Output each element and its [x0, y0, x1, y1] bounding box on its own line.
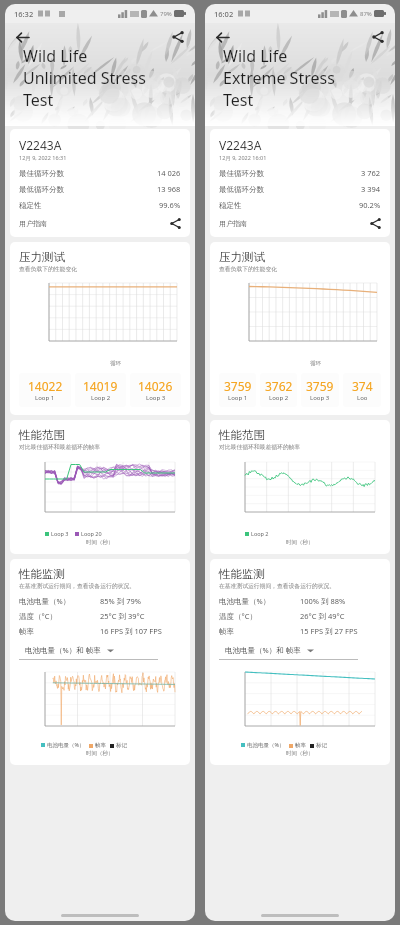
button[interactable]: 电池电量（%）和 帧率: [219, 645, 381, 660]
button[interactable]: 374: [343, 378, 381, 402]
staticText: 最低循环分数: [219, 185, 264, 194]
staticText: 12月 9, 2022 16:31: [19, 154, 67, 162]
button[interactable]: 14019: [75, 378, 126, 402]
staticText: 循环: [110, 360, 121, 367]
staticText: 电池电量（%）: [247, 741, 285, 749]
button[interactable]: 14026: [130, 378, 181, 402]
staticText: 90.2%: [359, 200, 381, 210]
staticText: Loop 3: [51, 530, 69, 537]
staticText: Loop 3: [310, 394, 330, 402]
staticText: Loop 2: [91, 394, 111, 402]
button[interactable]: Back: [10, 25, 34, 49]
staticText: Loop 20: [81, 530, 102, 537]
staticText: Extreme Stress: [223, 67, 335, 89]
button[interactable]: Share: [166, 25, 190, 49]
staticText: Loop 2: [269, 394, 289, 402]
staticText: Loop 2: [251, 530, 269, 537]
staticText: 帧率: [19, 627, 34, 636]
staticText: 16 FPS 到 107 FPS: [100, 626, 162, 636]
staticText: 15 FPS 到 27 FPS: [300, 626, 358, 636]
staticText: 温度（°C）: [19, 611, 57, 621]
staticText: 压力测试: [19, 250, 65, 264]
staticText: 85% 到 79%: [100, 596, 142, 606]
staticText: 374: [352, 378, 373, 394]
button[interactable]: 用户指南: [219, 218, 381, 229]
staticText: 电池电量（%）: [219, 596, 271, 606]
staticText: 电池电量（%）: [47, 741, 85, 749]
staticText: 压力测试: [219, 250, 265, 264]
staticText: 26°C 到 49°C: [300, 611, 345, 621]
staticText: 时间（秒）: [286, 539, 314, 546]
staticText: 性能范围: [19, 428, 65, 442]
button[interactable]: 3759: [301, 378, 339, 402]
button[interactable]: 14022: [19, 378, 71, 402]
staticText: 3759: [306, 378, 334, 394]
staticText: 对比最佳循环和最差循环的帧率: [219, 443, 301, 450]
staticText: 性能监测: [19, 567, 65, 581]
staticText: 14022: [28, 378, 63, 394]
staticText: V2243A: [219, 137, 262, 153]
staticText: Wild Life: [23, 45, 88, 67]
staticText: 查看负载下的性能变化: [19, 265, 77, 272]
staticText: 99.6%: [159, 200, 181, 210]
staticText: Unlimited Stress: [23, 67, 146, 89]
staticText: 帧率: [295, 742, 306, 749]
staticText: 稳定性: [19, 201, 42, 210]
staticText: 25°C 到 39°C: [100, 611, 145, 621]
button[interactable]: 用户指南: [19, 218, 181, 229]
staticText: Test: [23, 89, 54, 111]
staticText: 16:02: [214, 9, 234, 19]
staticText: 用户指南: [219, 219, 247, 228]
staticText: 标记: [316, 742, 327, 749]
staticText: 最佳循环分数: [19, 169, 64, 178]
staticText: 电池电量（%）和 帧率: [225, 645, 301, 655]
staticText: 14 026: [157, 168, 181, 178]
staticText: 14019: [83, 378, 118, 394]
button[interactable]: 3762: [260, 378, 297, 402]
staticText: Wild Life: [223, 45, 288, 67]
staticText: 稳定性: [219, 201, 242, 210]
staticText: 13 968: [157, 184, 181, 194]
staticText: 87%: [360, 10, 372, 18]
staticText: V2243A: [19, 137, 62, 153]
staticText: 电池电量（%）和 帧率: [25, 645, 101, 655]
staticText: 对比最佳循环和最差循环的帧率: [19, 443, 101, 450]
staticText: 用户指南: [19, 219, 47, 228]
staticText: 循环: [310, 360, 321, 367]
staticText: 温度（°C）: [219, 611, 257, 621]
staticText: 性能监测: [219, 567, 265, 581]
staticText: 查看负载下的性能变化: [219, 265, 277, 272]
staticText: 3 762: [361, 168, 381, 178]
staticText: Loop 3: [146, 394, 166, 402]
staticText: Loop 1: [35, 394, 55, 402]
button[interactable]: 3759: [219, 378, 256, 402]
staticText: 时间（秒）: [86, 750, 114, 757]
staticText: 最低循环分数: [19, 185, 64, 194]
staticText: 在基准测试运行期间，查看设备运行的状况。: [19, 582, 135, 589]
button[interactable]: 电池电量（%）和 帧率: [19, 645, 181, 660]
button[interactable]: Share: [366, 25, 390, 49]
staticText: 时间（秒）: [286, 750, 314, 757]
staticText: 帧率: [219, 627, 234, 636]
staticText: 79%: [160, 10, 172, 18]
staticText: Test: [223, 89, 254, 111]
staticText: 3 394: [361, 184, 381, 194]
staticText: Loop 1: [228, 394, 248, 402]
staticText: 在基准测试运行期间，查看设备运行的状况。: [219, 582, 335, 589]
staticText: 12月 9, 2022 16:01: [219, 154, 267, 162]
staticText: 电池电量（%）: [19, 596, 71, 606]
staticText: 16:32: [14, 9, 34, 19]
staticText: 100% 到 88%: [300, 596, 346, 606]
staticText: 性能范围: [219, 428, 265, 442]
staticText: 3759: [224, 378, 252, 394]
button[interactable]: Back: [210, 25, 234, 49]
staticText: 帧率: [95, 742, 106, 749]
staticText: 3762: [265, 378, 293, 394]
staticText: 时间（秒）: [86, 539, 114, 546]
staticText: 最佳循环分数: [219, 169, 264, 178]
staticText: 标记: [116, 742, 127, 749]
staticText: 14026: [138, 378, 173, 394]
staticText: Loo: [357, 394, 368, 402]
